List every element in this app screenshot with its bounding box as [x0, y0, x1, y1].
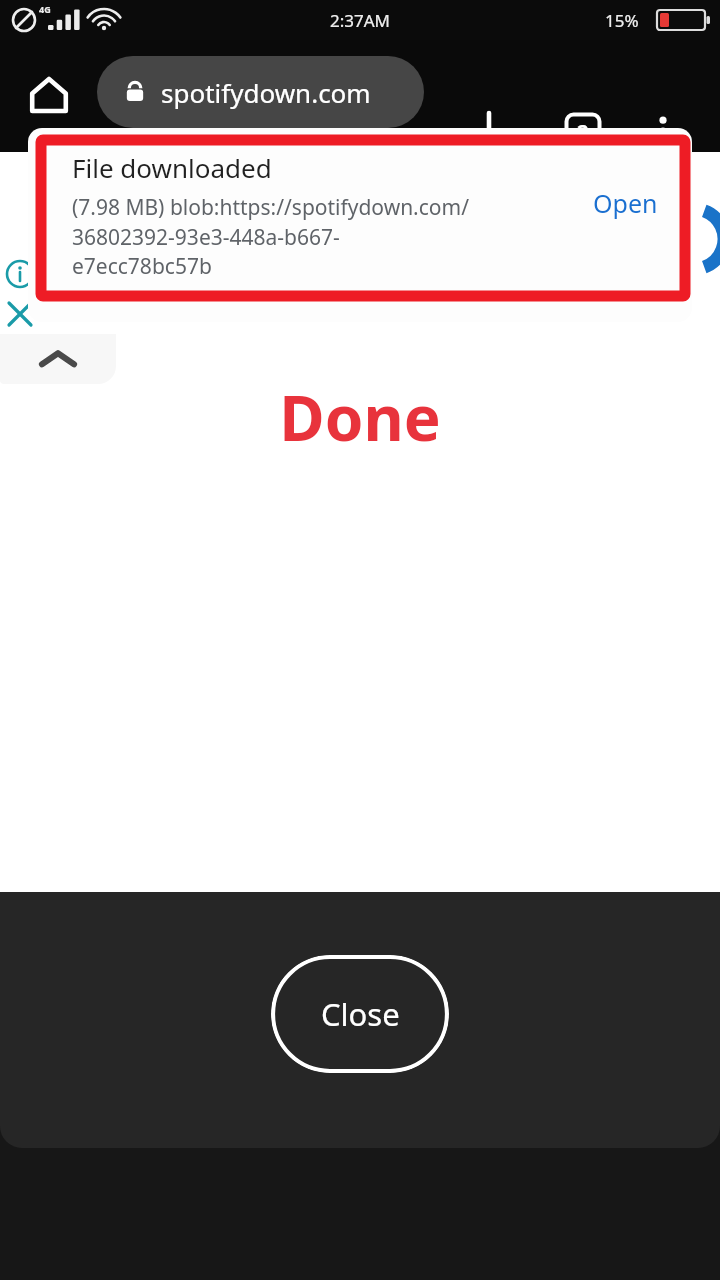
staticText: 2 — [577, 118, 589, 145]
button[interactable]: Home — [20, 66, 78, 124]
button[interactable]: Close — [271, 955, 449, 1073]
staticText: (7.98 MB) blob:https://spotifydown.com/ … — [72, 193, 469, 280]
button[interactable]: New tab — [461, 103, 517, 159]
button[interactable]: More options — [635, 103, 691, 159]
button[interactable]: spotifydown.com — [97, 56, 424, 128]
staticText: 2:37AM — [330, 9, 391, 32]
staticText: 15% — [605, 9, 639, 32]
staticText: File downloaded — [72, 150, 272, 185]
button[interactable]: Tabs — [555, 103, 611, 159]
button[interactable]: Open — [589, 182, 662, 224]
staticText: 4G — [39, 3, 51, 15]
staticText: Close — [321, 993, 400, 1035]
staticText: Done — [279, 375, 441, 459]
staticText: Open — [593, 186, 658, 220]
button[interactable]: File downloaded — [28, 128, 692, 322]
staticText: spotifydown.com — [161, 75, 371, 110]
button[interactable]: Expand — [0, 334, 116, 384]
